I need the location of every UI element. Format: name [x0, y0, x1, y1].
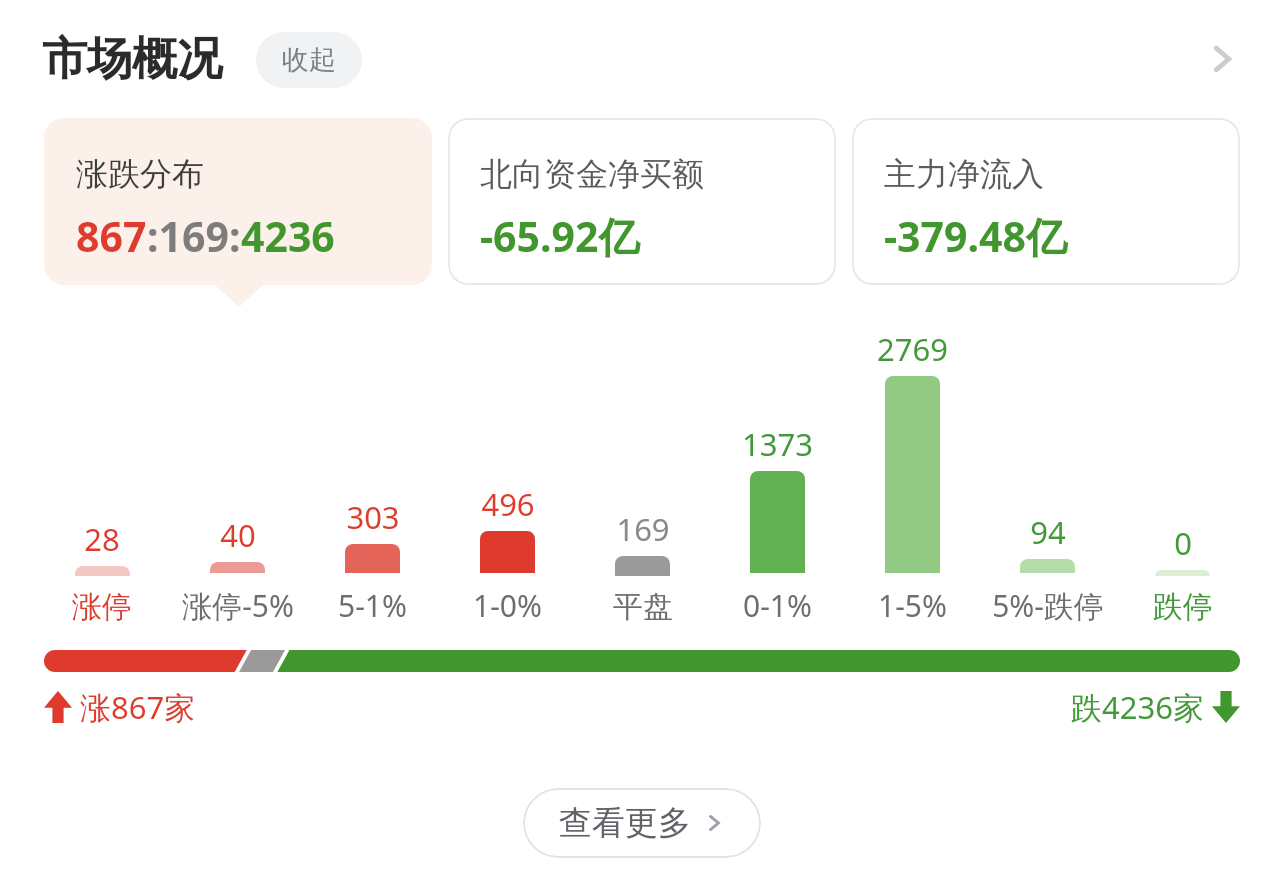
button[interactable] [44, 650, 1240, 672]
button[interactable]: 涨867家 [44, 686, 196, 728]
button[interactable]: 涨跌分布 [44, 118, 432, 285]
staticText: 0-1% [743, 585, 812, 626]
staticText: 496 [481, 483, 535, 525]
staticText: 主力净流入 [884, 154, 1044, 194]
button[interactable]: 94 [980, 511, 1115, 626]
staticText: 平盘 [613, 588, 673, 626]
staticText: :169: [147, 208, 241, 264]
staticText: -65.92亿 [480, 208, 640, 264]
button[interactable]: 收起 [256, 32, 362, 88]
button[interactable]: 跌4236家 [1071, 686, 1240, 728]
staticText: 5%-跌停 [992, 585, 1104, 626]
staticText: 北向资金净买额 [480, 154, 704, 194]
button[interactable]: 1373 [710, 423, 845, 626]
staticText: 1373 [742, 423, 813, 465]
button[interactable]: 28 [34, 518, 170, 626]
staticText: 28 [84, 518, 120, 560]
staticText: 2769 [877, 328, 948, 370]
button[interactable]: 主力净流入 [852, 118, 1240, 285]
staticText: 1-5% [878, 585, 947, 626]
button[interactable]: 展开更多 [1194, 31, 1250, 87]
staticText: 涨跌分布 [76, 154, 204, 194]
staticText: 涨停-5% [182, 585, 294, 626]
button[interactable]: 40 [170, 514, 305, 626]
button[interactable]: 查看更多 [523, 788, 761, 858]
staticText: 收起 [282, 43, 336, 77]
staticText: 867 [76, 208, 147, 264]
button[interactable]: 2769 [845, 328, 980, 626]
staticText: 0 [1174, 522, 1192, 564]
staticText: 查看更多 [559, 802, 691, 844]
staticText: 303 [346, 496, 400, 538]
staticText: 40 [220, 514, 256, 556]
staticText: 94 [1030, 511, 1066, 553]
button[interactable]: 169 [575, 508, 710, 626]
staticText: 5-1% [338, 585, 407, 626]
staticText: 1-0% [473, 585, 542, 626]
button[interactable]: 0 [1115, 522, 1250, 626]
staticText: 跌4236家 [1071, 686, 1204, 728]
staticText: 4236 [241, 208, 335, 264]
button[interactable]: 303 [305, 496, 440, 626]
staticText: 跌停 [1153, 588, 1213, 626]
staticText: 169 [616, 508, 670, 550]
button[interactable]: 北向资金净买额 [448, 118, 836, 285]
staticText: 市场概况 [42, 31, 222, 88]
button[interactable]: 市场概况 [42, 31, 362, 88]
button[interactable]: 496 [440, 483, 575, 626]
staticText: 涨867家 [80, 686, 196, 728]
staticText: 涨停 [72, 588, 132, 626]
staticText: -379.48亿 [884, 208, 1067, 264]
